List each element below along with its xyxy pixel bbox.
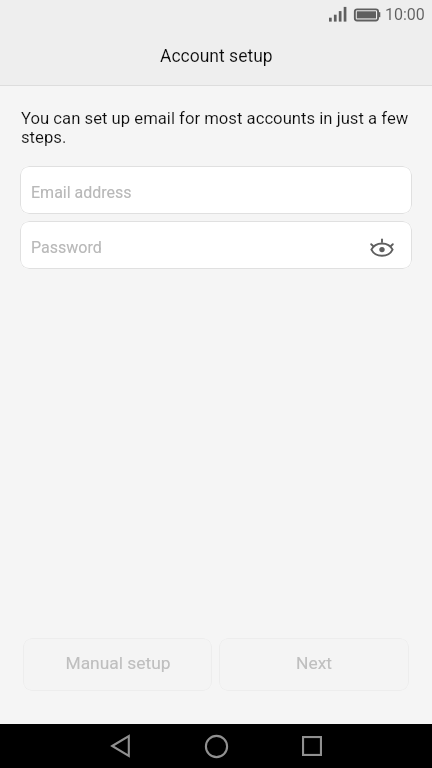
staticText: Manual setup <box>65 653 171 673</box>
button[interactable]: Email address <box>20 166 412 214</box>
button[interactable]: Password <box>20 221 412 269</box>
button[interactable]: Next <box>219 638 409 691</box>
button[interactable]: Home <box>194 724 238 768</box>
button[interactable]: Recent apps <box>290 724 334 768</box>
button[interactable]: Show password <box>361 224 403 266</box>
staticText: Next <box>296 653 332 673</box>
button[interactable]: Back <box>98 724 142 768</box>
staticText: Account setup <box>160 46 273 67</box>
staticText: 10:00 <box>385 5 425 24</box>
staticText: Password <box>31 238 102 257</box>
button[interactable]: Manual setup <box>23 638 212 691</box>
staticText: Email address <box>31 183 132 202</box>
staticText: You can set up email for most accounts i… <box>21 109 422 147</box>
